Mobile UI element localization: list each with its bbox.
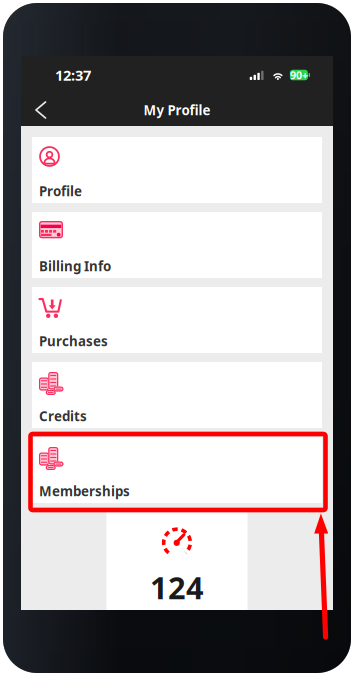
- staticText: Profile: [39, 182, 82, 200]
- staticText: My Profile: [143, 101, 210, 119]
- staticText: Purchases: [39, 332, 108, 350]
- staticText: 12:37: [55, 65, 91, 85]
- button[interactable]: Back: [21, 95, 56, 125]
- button[interactable]: Memberships: [32, 437, 322, 503]
- button[interactable]: Profile: [32, 137, 322, 203]
- staticText: Memberships: [39, 482, 130, 500]
- button[interactable]: Purchases: [32, 287, 322, 353]
- staticText: Billing Info: [39, 257, 111, 275]
- staticText: Credits: [39, 407, 87, 425]
- staticText: 124: [150, 567, 204, 608]
- button[interactable]: Billing Info: [32, 212, 322, 278]
- staticText: 90+: [290, 68, 308, 82]
- button[interactable]: Credits: [32, 362, 322, 428]
